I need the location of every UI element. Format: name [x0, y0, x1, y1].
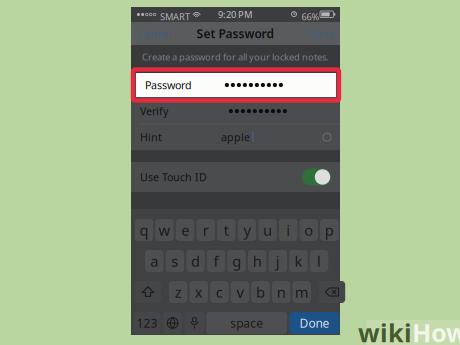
- staticText: f: [214, 251, 219, 271]
- button[interactable]: v: [231, 281, 249, 303]
- staticText: wiki: [358, 316, 412, 345]
- button[interactable]: d: [186, 250, 205, 272]
- staticText: y: [243, 220, 250, 240]
- staticText: w: [158, 220, 170, 240]
- button[interactable]: b: [251, 281, 270, 303]
- staticText: h: [253, 251, 262, 271]
- staticText: r: [203, 220, 209, 240]
- staticText: k: [294, 251, 302, 271]
- staticText: 123: [137, 315, 158, 331]
- staticText: Done: [307, 26, 334, 41]
- staticText: t: [224, 220, 229, 240]
- staticText: space: [230, 315, 263, 331]
- staticText: SMART: [160, 10, 190, 23]
- button[interactable]: q: [135, 219, 153, 241]
- button[interactable]: t: [217, 219, 236, 241]
- button[interactable]: Cancel: [137, 26, 171, 41]
- staticText: Password: [140, 78, 187, 93]
- button[interactable]: Done: [307, 26, 334, 41]
- staticText: l: [317, 251, 321, 271]
- button[interactable]: Password: [131, 73, 340, 98]
- button[interactable]: y: [238, 219, 256, 241]
- staticText: p: [325, 220, 334, 240]
- button[interactable]: f: [207, 250, 225, 272]
- staticText: Cancel: [137, 26, 171, 41]
- staticText: Password: [145, 78, 192, 92]
- staticText: e: [181, 220, 189, 240]
- staticText: m: [295, 282, 309, 302]
- staticText: n: [277, 282, 286, 302]
- button[interactable]: Hint: [131, 124, 340, 150]
- button[interactable]: Use Touch ID: [302, 168, 331, 185]
- staticText: u: [263, 220, 272, 240]
- staticText: v: [236, 282, 243, 302]
- button[interactable]: c: [210, 281, 229, 303]
- button[interactable]: Verify: [131, 99, 340, 124]
- button[interactable]: space: [206, 312, 287, 334]
- staticText: o: [304, 220, 313, 240]
- button[interactable]: z: [169, 281, 187, 303]
- staticText: c: [216, 282, 223, 302]
- staticText: q: [139, 220, 148, 240]
- staticText: b: [256, 282, 265, 302]
- staticText: Set Password: [196, 25, 274, 41]
- staticText: apple: [221, 130, 250, 144]
- staticText: 66%: [301, 10, 319, 23]
- button[interactable]: r: [196, 219, 215, 241]
- button[interactable]: a: [145, 250, 163, 272]
- button[interactable]: Shift: [135, 281, 161, 303]
- button[interactable]: w: [155, 219, 174, 241]
- staticText: Verify: [140, 104, 168, 118]
- staticText: Create a password for all your locked no…: [142, 51, 329, 63]
- button[interactable]: Next keyboard: [163, 312, 182, 334]
- button[interactable]: l: [310, 250, 328, 272]
- button[interactable]: s: [166, 250, 184, 272]
- button[interactable]: n: [272, 281, 290, 303]
- staticText: x: [195, 282, 203, 302]
- button[interactable]: u: [258, 219, 277, 241]
- staticText: z: [175, 282, 182, 302]
- button[interactable]: Delete: [319, 281, 345, 303]
- staticText: j: [276, 251, 280, 271]
- staticText: How: [412, 316, 460, 345]
- button[interactable]: h: [248, 250, 266, 272]
- button[interactable]: Dictation: [185, 312, 204, 334]
- button[interactable]: k: [289, 250, 308, 272]
- button[interactable]: Done: [289, 312, 339, 334]
- staticText: Use Touch ID: [140, 170, 207, 184]
- button[interactable]: g: [227, 250, 246, 272]
- staticText: Done: [299, 315, 329, 331]
- button[interactable]: x: [189, 281, 208, 303]
- button[interactable]: i: [279, 219, 297, 241]
- staticText: 9:20 PM: [218, 8, 253, 21]
- staticText: a: [150, 251, 158, 271]
- staticText: i: [286, 220, 290, 240]
- button[interactable]: j: [269, 250, 287, 272]
- button[interactable]: p: [320, 219, 339, 241]
- staticText: d: [191, 251, 200, 271]
- staticText: Hint: [140, 130, 162, 144]
- button[interactable]: o: [299, 219, 318, 241]
- button[interactable]: e: [176, 219, 194, 241]
- staticText: s: [171, 251, 178, 271]
- button[interactable]: 123: [134, 312, 161, 334]
- button[interactable]: m: [292, 281, 311, 303]
- staticText: g: [232, 251, 241, 271]
